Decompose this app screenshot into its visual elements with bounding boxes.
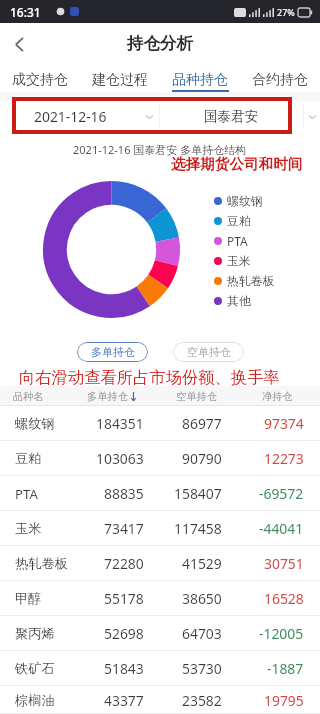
staticText: 品种持仓 [172, 71, 228, 89]
staticText: 16528 [264, 589, 304, 608]
staticText: 72280 [104, 554, 144, 573]
staticText: 螺纹钢 [15, 415, 55, 432]
staticText: 30751 [264, 554, 304, 573]
staticText: 品种名 [13, 390, 44, 403]
button[interactable]: 国泰君安 [160, 101, 303, 131]
staticText: 螺纹钢 [227, 194, 263, 209]
staticText: PTA [227, 233, 248, 249]
staticText: 热轧卷板 [227, 274, 275, 289]
button[interactable]: 棕榈油 [0, 686, 320, 714]
staticText: -1887 [267, 659, 304, 678]
staticText: 64703 [182, 624, 222, 643]
staticText: 建仓过程 [92, 71, 148, 89]
button[interactable]: 铁矿石 [0, 651, 320, 686]
staticText: 73417 [104, 519, 144, 538]
button[interactable]: PTA [0, 476, 320, 511]
staticText: 玉米 [227, 254, 251, 269]
button[interactable]: 玉米 [0, 511, 320, 546]
staticText: 国泰君安 [204, 108, 259, 125]
staticText: 铁矿石 [15, 660, 55, 677]
staticText: 158407 [174, 484, 222, 503]
button[interactable] [140, 101, 159, 131]
staticText: 持仓分析 [127, 33, 193, 54]
staticText: 热轧卷板 [15, 555, 68, 572]
staticText: 合约持仓 [252, 71, 308, 89]
staticText: 27% [277, 6, 295, 18]
staticText: 棕榈油 [15, 692, 55, 709]
staticText: 19795 [264, 691, 304, 710]
staticText: 103063 [96, 449, 144, 468]
staticText: 豆粕 [15, 450, 42, 467]
button[interactable]: 空单持仓 [173, 342, 244, 362]
button[interactable]: 建仓过程 [80, 62, 160, 92]
staticText: 空单持仓 [187, 345, 231, 359]
button[interactable]: 2021-12-16 [0, 101, 140, 131]
staticText: 97374 [264, 414, 304, 433]
staticText: 2021-12-16 国泰君安 多单持仓结构 [73, 142, 247, 156]
staticText: 成交持仓 [12, 71, 68, 89]
staticText: 41529 [182, 554, 222, 573]
staticText: 184351 [96, 414, 144, 433]
button[interactable]: 热轧卷板 [0, 546, 320, 581]
staticText: 52698 [104, 624, 144, 643]
staticText: 玉米 [15, 520, 42, 537]
staticText: 甲醇 [15, 590, 42, 607]
button[interactable]: 多单持仓 [77, 342, 148, 362]
staticText: 43377 [104, 691, 144, 710]
staticText: 16:31 [10, 4, 41, 20]
staticText: 117458 [174, 519, 222, 538]
button[interactable]: 品种持仓 [160, 62, 240, 92]
staticText: -44041 [259, 519, 304, 538]
staticText: 53730 [182, 659, 222, 678]
staticText: 55178 [104, 589, 144, 608]
staticText: PTA [15, 485, 38, 503]
staticText: -12005 [259, 624, 304, 643]
staticText: 多单持仓 [87, 390, 129, 403]
staticText: 38650 [182, 589, 222, 608]
staticText: 聚丙烯 [15, 625, 55, 642]
staticText: 空单持仓 [176, 390, 218, 403]
button[interactable] [304, 101, 320, 131]
staticText: 12273 [264, 449, 304, 468]
staticText: 其他 [227, 294, 251, 309]
button[interactable]: 甲醇 [0, 581, 320, 616]
button[interactable]: 豆粕 [0, 441, 320, 476]
button[interactable]: 成交持仓 [0, 62, 80, 92]
staticText: 选择期货公司和时间 [171, 155, 303, 173]
button[interactable]: 合约持仓 [240, 62, 320, 92]
staticText: 90790 [182, 449, 222, 468]
button[interactable]: Back [0, 24, 38, 62]
staticText: -69572 [259, 484, 304, 503]
staticText: 向右滑动查看所占市场份额、换手率 [19, 367, 280, 386]
staticText: 23582 [182, 691, 222, 710]
staticText: 51843 [104, 659, 144, 678]
staticText: 多单持仓 [91, 345, 135, 359]
staticText: 88835 [104, 484, 144, 503]
staticText: 净持仓 [262, 390, 293, 403]
button[interactable]: 聚丙烯 [0, 616, 320, 651]
staticText: 86977 [182, 414, 222, 433]
staticText: 豆粕 [227, 214, 251, 229]
button[interactable]: 螺纹钢 [0, 406, 320, 441]
staticText: 2021-12-16 [34, 107, 107, 126]
